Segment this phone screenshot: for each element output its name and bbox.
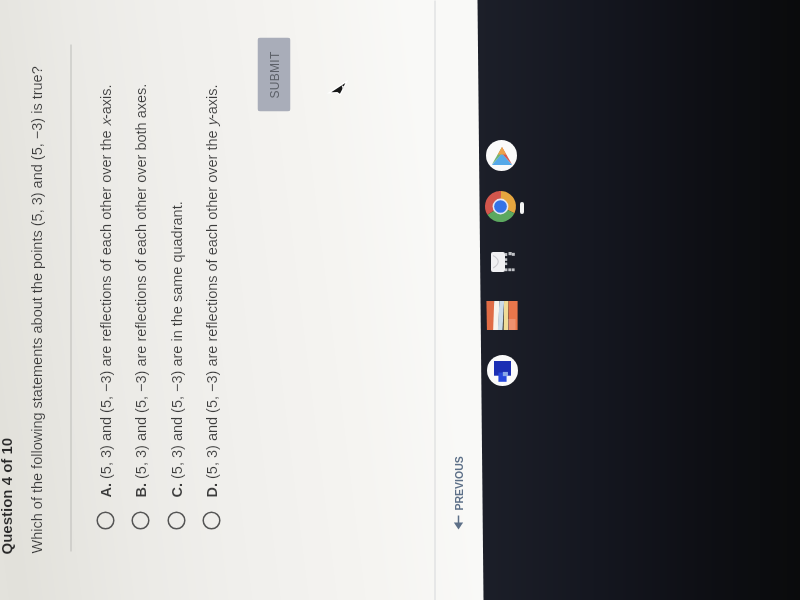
button[interactable]: Files [489,250,516,274]
staticText: Which of the following statements about … [28,65,44,553]
button[interactable]: D. (5, 3) and (5, −3) are reflections of… [200,61,222,531]
button[interactable]: Drive [486,140,517,171]
button[interactable]: C. (5, 3) and (5, −3) are in the same qu… [165,61,187,531]
button[interactable]: PREVIOUS [448,455,468,529]
staticText: Question 4 of 10 [0,437,14,554]
button[interactable]: Word [487,355,518,386]
staticText: PREVIOUS [452,455,464,510]
staticText: C. (5, 3) and (5, −3) are in the same qu… [168,200,184,497]
staticText: B. (5, 3) and (5, −3) are reflections of… [132,83,148,497]
staticText: A. (5, 3) and (5, −3) are reflections of… [97,83,113,497]
button[interactable]: B. (5, 3) and (5, −3) are reflections of… [129,61,151,531]
button[interactable]: Gallery [488,300,516,331]
button[interactable]: Chrome [485,191,516,222]
button[interactable]: Question 4 of 10 [0,437,14,554]
staticText: SUBMIT [267,50,280,98]
button[interactable]: SUBMIT [257,37,290,111]
staticText: D. (5, 3) and (5, −3) are reflections of… [203,83,219,497]
button[interactable]: A. (5, 3) and (5, −3) are reflections of… [94,61,116,531]
